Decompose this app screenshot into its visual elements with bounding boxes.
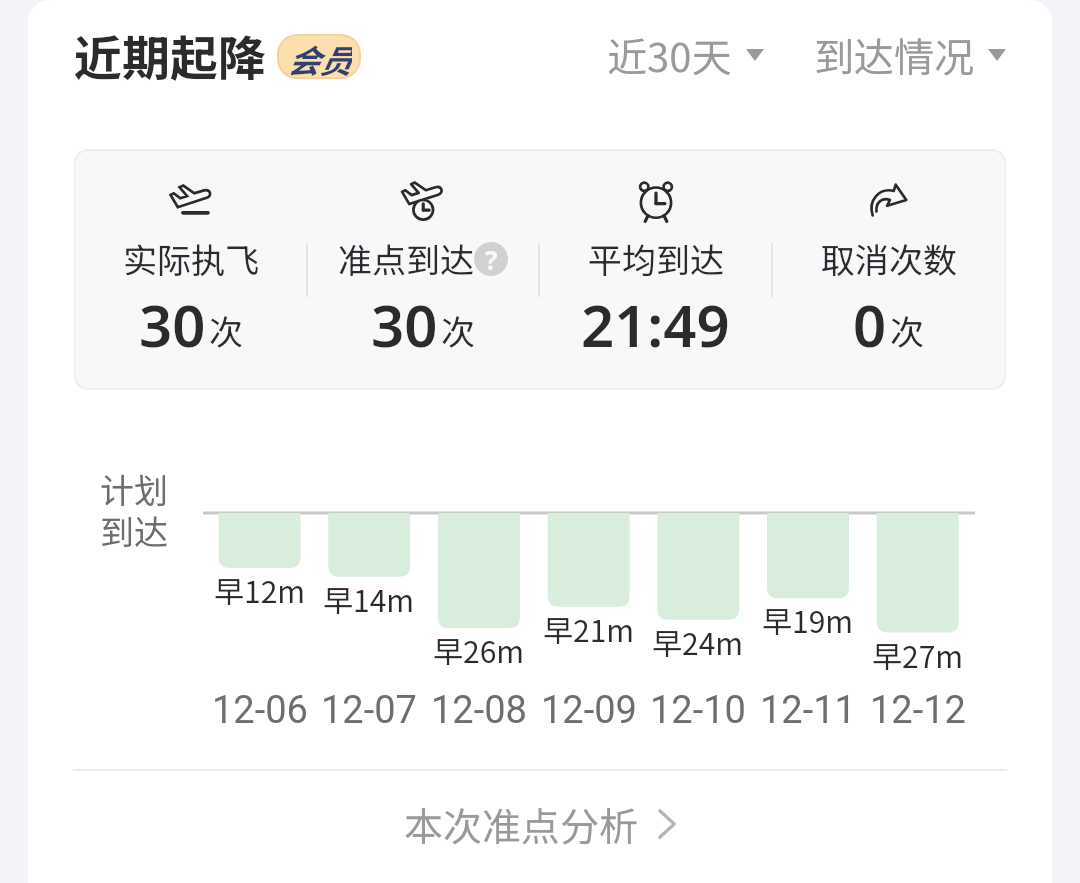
staticText: 会员 bbox=[287, 36, 352, 77]
staticText: ? bbox=[485, 242, 498, 276]
staticText: 早27m bbox=[872, 633, 964, 676]
staticText: 30 bbox=[139, 285, 206, 364]
button[interactable]: Help bbox=[474, 242, 508, 276]
staticText: 早26m bbox=[433, 628, 525, 671]
button[interactable]: 12-07 早14m bbox=[314, 509, 424, 734]
staticText: 早19m bbox=[762, 598, 854, 641]
button[interactable]: 12-06 早12m bbox=[205, 509, 315, 734]
staticText: 次 bbox=[209, 306, 243, 355]
staticText: 准点到达 bbox=[338, 234, 474, 283]
button[interactable]: 本次准点分析 bbox=[28, 768, 1052, 880]
staticText: 12-06 bbox=[212, 688, 308, 733]
staticText: 12-11 bbox=[760, 688, 856, 733]
staticText: 次 bbox=[441, 306, 475, 355]
staticText: 30 bbox=[371, 285, 438, 364]
staticText: 12-10 bbox=[650, 688, 746, 733]
staticText: 近30天 bbox=[607, 26, 732, 84]
staticText: 21:49 bbox=[581, 285, 730, 364]
button[interactable]: 12-10 早24m bbox=[643, 509, 753, 734]
staticText: 取消次数 bbox=[821, 234, 957, 283]
button[interactable]: 到达情况 bbox=[814, 26, 1006, 84]
staticText: 12-12 bbox=[870, 688, 966, 733]
button[interactable]: 12-12 早27m bbox=[863, 509, 973, 734]
staticText: 早21m bbox=[543, 607, 635, 650]
staticText: 12-08 bbox=[431, 688, 527, 733]
button[interactable]: 12-08 早26m bbox=[424, 509, 534, 734]
staticText: 12-09 bbox=[541, 688, 637, 733]
staticText: 本次准点分析 bbox=[404, 796, 639, 852]
staticText: 早24m bbox=[652, 620, 744, 663]
staticText: 0 bbox=[853, 285, 887, 364]
staticText: 实际执飞 bbox=[123, 234, 259, 283]
button[interactable]: 12-11 早19m bbox=[753, 509, 863, 734]
button[interactable]: 平均到达 bbox=[540, 151, 771, 388]
button[interactable]: 12-09 早21m bbox=[534, 509, 644, 734]
staticText: 早14m bbox=[323, 577, 415, 620]
button[interactable]: 会员 bbox=[279, 36, 359, 77]
staticText: 到达 bbox=[100, 506, 168, 555]
button[interactable]: 近30天 bbox=[607, 26, 764, 84]
button[interactable]: 实际执飞 bbox=[76, 151, 306, 388]
staticText: 到达情况 bbox=[814, 26, 974, 84]
button[interactable]: 取消次数 bbox=[773, 151, 1004, 388]
staticText: 次 bbox=[890, 306, 924, 355]
staticText: 平均到达 bbox=[588, 234, 724, 283]
staticText: 早12m bbox=[214, 568, 306, 611]
staticText: 计划 bbox=[100, 464, 168, 513]
staticText: 近期起降 bbox=[74, 20, 267, 90]
staticText: 12-07 bbox=[321, 688, 417, 733]
button[interactable]: 准点到达 bbox=[308, 151, 538, 388]
